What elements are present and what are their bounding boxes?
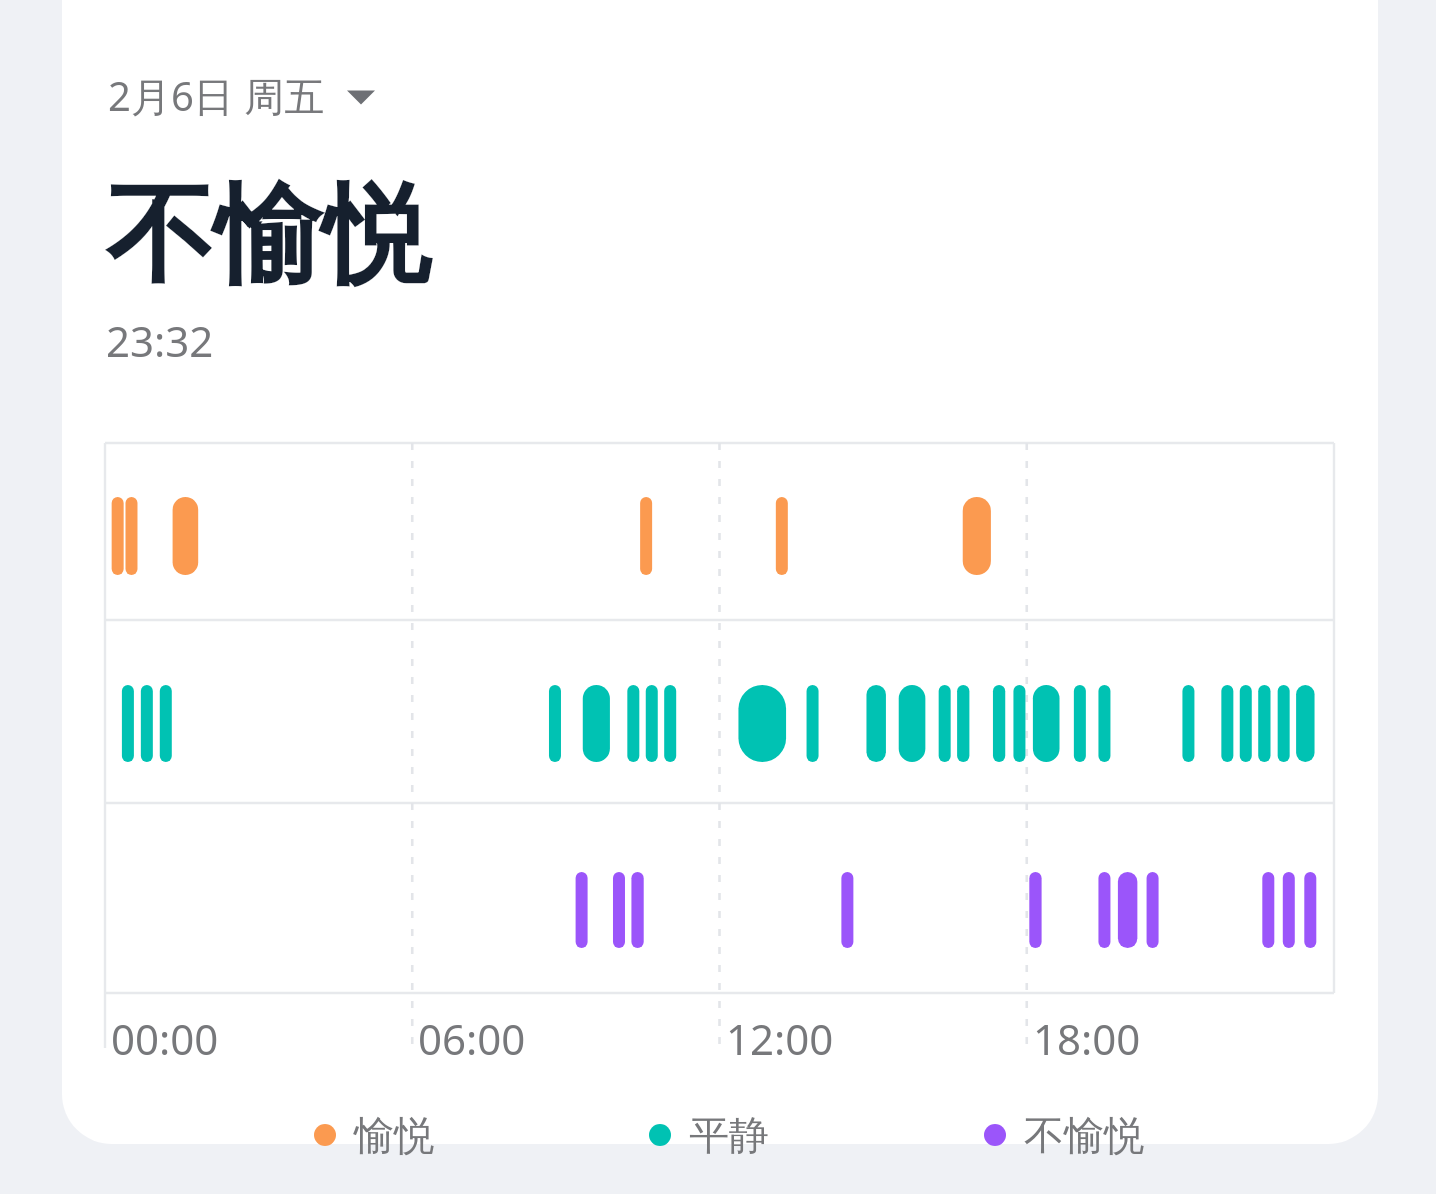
staticText: 不愉悦 [1024,1110,1144,1160]
staticText: 平静 [689,1110,769,1160]
button[interactable]: 2月6日 周五 [104,64,379,127]
button[interactable]: 愉悦 [308,1104,440,1166]
staticText: 2月6日 周五 [108,68,325,123]
staticText: 00:00 [111,1010,219,1067]
staticText: 12:00 [726,1010,834,1067]
button[interactable]: 不愉悦 [978,1104,1150,1166]
staticText: 23:32 [106,312,214,369]
staticText: 不愉悦 [106,168,430,304]
staticText: 06:00 [418,1010,526,1067]
button[interactable]: 平静 [643,1104,775,1166]
staticText: 18:00 [1033,1010,1141,1067]
other: Select date [347,86,375,106]
staticText: 愉悦 [354,1110,434,1160]
